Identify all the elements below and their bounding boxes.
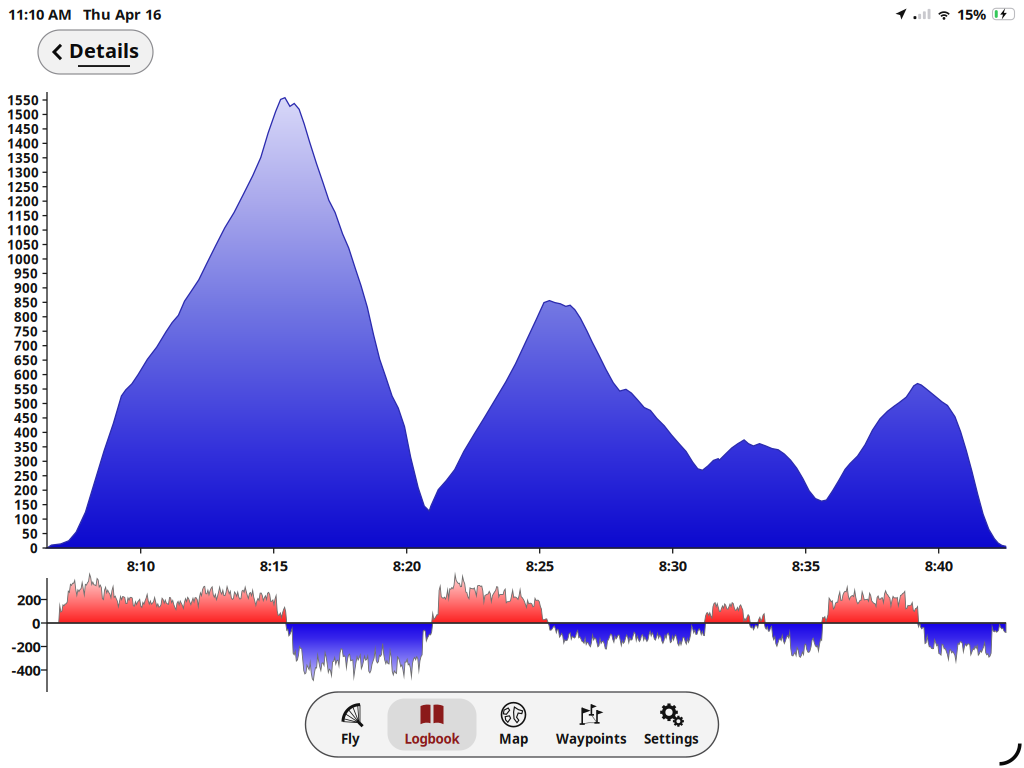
staticText: Map — [499, 730, 528, 747]
staticText: Thu Apr 16 — [83, 4, 161, 24]
staticText: 0 — [32, 613, 40, 633]
button[interactable]: Fly — [313, 698, 387, 750]
staticText: 8:20 — [393, 556, 421, 575]
staticText: 700 — [14, 337, 38, 354]
staticText: Details — [69, 37, 139, 64]
staticText: Logbook — [404, 730, 459, 747]
staticText: Waypoints — [556, 730, 627, 747]
staticText: 200 — [14, 481, 38, 499]
staticText: 1250 — [7, 178, 39, 196]
staticText: 1400 — [7, 134, 39, 152]
staticText: 8:25 — [526, 556, 554, 575]
button[interactable]: Details — [38, 30, 153, 74]
staticText: 1150 — [7, 207, 39, 224]
staticText: 50 — [22, 525, 38, 542]
staticText: 300 — [14, 452, 38, 470]
staticText: 150 — [14, 496, 38, 513]
staticText: 850 — [14, 293, 38, 311]
staticText: Settings — [644, 730, 699, 747]
staticText: 1300 — [7, 163, 39, 181]
staticText: 250 — [14, 467, 38, 485]
staticText: Fly — [341, 730, 360, 747]
staticText: 8:40 — [925, 556, 953, 575]
button[interactable]: Waypoints — [550, 698, 632, 750]
staticText: 1050 — [7, 236, 39, 253]
staticText: 8:30 — [659, 556, 687, 575]
staticText: 8:15 — [260, 556, 288, 575]
button[interactable]: Logbook — [387, 698, 476, 750]
staticText: 950 — [14, 265, 38, 282]
staticText: 1500 — [7, 106, 39, 123]
staticText: 900 — [14, 279, 38, 297]
staticText: 0 — [30, 539, 38, 557]
staticText: 1100 — [7, 221, 39, 239]
staticText: 1000 — [7, 250, 39, 268]
staticText: 1550 — [7, 91, 39, 109]
staticText: 1450 — [7, 120, 39, 138]
staticText: 8:35 — [792, 556, 820, 575]
staticText: 400 — [14, 423, 38, 441]
button[interactable]: Settings — [632, 698, 710, 750]
staticText: 550 — [14, 380, 38, 398]
staticText: 1200 — [7, 192, 39, 210]
staticText: 1350 — [7, 149, 39, 167]
staticText: 450 — [14, 409, 38, 427]
staticText: 11:10 AM — [8, 4, 72, 24]
staticText: 350 — [14, 438, 38, 456]
staticText: 600 — [14, 366, 38, 383]
staticText: 750 — [14, 322, 38, 340]
staticText: 650 — [14, 351, 38, 369]
staticText: -200 — [11, 637, 40, 656]
staticText: 8:10 — [127, 556, 155, 575]
staticText: 200 — [17, 590, 41, 609]
button[interactable]: Map — [476, 698, 550, 750]
staticText: 15% — [957, 4, 986, 24]
staticText: 100 — [14, 510, 38, 528]
staticText: 500 — [14, 395, 38, 412]
staticText: 800 — [14, 308, 38, 326]
staticText: -400 — [11, 660, 40, 680]
